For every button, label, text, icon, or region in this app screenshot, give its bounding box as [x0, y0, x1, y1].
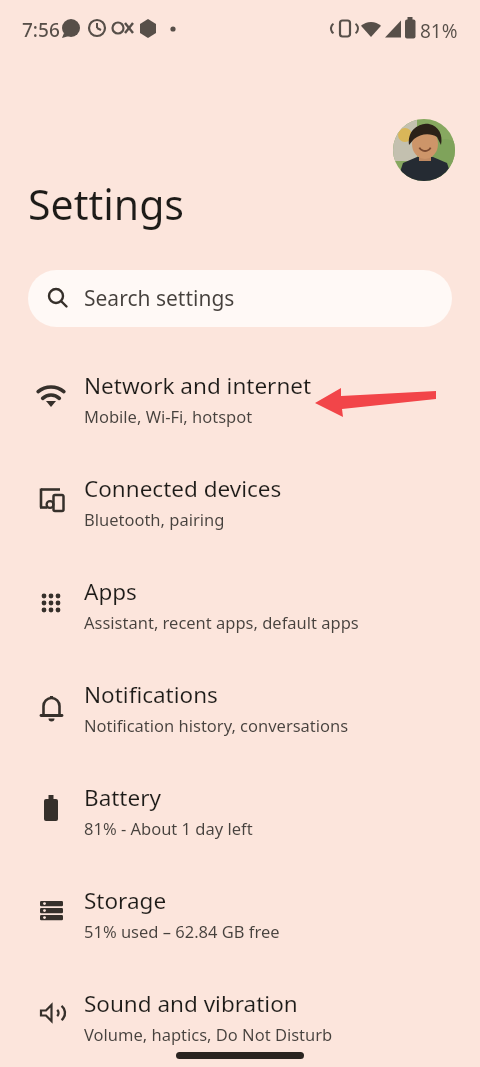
- staticText: Network and internet: [84, 370, 312, 401]
- staticText: Battery: [84, 782, 161, 813]
- staticText: Notification history, conversations: [84, 714, 349, 736]
- button[interactable]: Network and internet: [0, 349, 480, 451]
- staticText: Bluetooth, pairing: [84, 508, 225, 530]
- button[interactable]: [393, 119, 455, 181]
- staticText: Mobile, Wi-Fi, hotspot: [84, 405, 253, 427]
- staticText: 81%: [420, 18, 458, 44]
- staticText: 81% - About 1 day left: [84, 817, 253, 839]
- button[interactable]: Search settings: [28, 270, 452, 327]
- staticText: Notifications: [84, 679, 218, 710]
- staticText: Assistant, recent apps, default apps: [84, 611, 359, 633]
- button[interactable]: Apps: [0, 555, 480, 657]
- button[interactable]: Sound and vibration: [0, 967, 480, 1067]
- button[interactable]: Notifications: [0, 658, 480, 760]
- button[interactable]: Connected devices: [0, 452, 480, 554]
- button[interactable]: Storage: [0, 864, 480, 966]
- staticText: Sound and vibration: [84, 988, 298, 1019]
- staticText: Search settings: [84, 284, 235, 313]
- button[interactable]: Battery: [0, 761, 480, 863]
- staticText: Volume, haptics, Do Not Disturb: [84, 1023, 333, 1045]
- staticText: Connected devices: [84, 473, 282, 504]
- staticText: 51% used – 62.84 GB free: [84, 920, 280, 942]
- staticText: Settings: [28, 176, 185, 232]
- staticText: Storage: [84, 885, 167, 916]
- staticText: Apps: [84, 576, 137, 607]
- staticText: 7:56: [22, 17, 60, 43]
